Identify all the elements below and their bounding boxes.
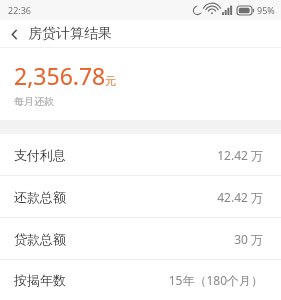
staticText: 95% [257, 4, 275, 16]
staticText: 支付利息 [14, 147, 66, 163]
staticText: 22:36 [8, 4, 32, 16]
staticText: 每月还款 [14, 95, 54, 108]
staticText: 30 万 [234, 231, 263, 247]
staticText: 12.42 万 [217, 147, 263, 163]
button[interactable]: 支付利息 [0, 134, 281, 175]
staticText: 还款总额 [14, 189, 66, 205]
staticText: 2,356.78元 [14, 60, 117, 91]
button[interactable]: Back [0, 20, 28, 48]
button[interactable]: 按揭年数 [0, 260, 281, 300]
staticText: 贷款总额 [14, 231, 66, 247]
staticText: 15年（180个月） [168, 272, 263, 288]
staticText: 房贷计算结果 [28, 25, 112, 43]
staticText: 42.42 万 [217, 189, 263, 205]
button[interactable]: 还款总额 [0, 176, 281, 217]
button[interactable]: 贷款总额 [0, 218, 281, 259]
staticText: 按揭年数 [14, 272, 66, 288]
